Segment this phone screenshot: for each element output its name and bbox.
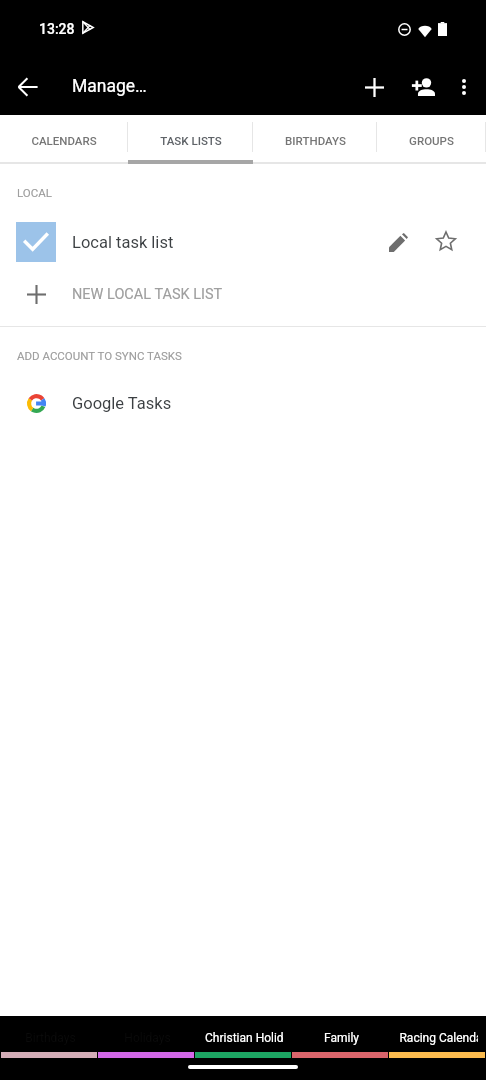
button[interactable]: Add — [350, 63, 398, 111]
staticText: Manage… — [72, 76, 147, 97]
button[interactable]: Back — [4, 63, 52, 111]
button[interactable]: Edit — [374, 218, 422, 266]
staticText: Racing Calendar — [399, 1031, 478, 1045]
button[interactable]: Local task list — [0, 214, 486, 270]
button[interactable]: CALENDARS — [0, 115, 128, 164]
staticText: Christian Holidays — [205, 1031, 284, 1045]
staticText: BIRTHDAYS — [285, 134, 346, 147]
button[interactable]: Favorite — [422, 218, 470, 266]
staticText: LOCAL — [17, 186, 52, 199]
staticText: Family — [302, 1031, 381, 1045]
button[interactable]: GROUPS — [377, 115, 486, 164]
button[interactable]: Christian Holidays — [194, 1016, 291, 1058]
button[interactable]: Google Tasks — [0, 379, 486, 427]
staticText: Google Tasks — [72, 394, 172, 413]
staticText: CALENDARS — [31, 134, 97, 147]
button[interactable]: NEW LOCAL TASK LIST — [0, 270, 486, 318]
button[interactable]: Family — [291, 1016, 388, 1058]
button[interactable]: Birthdays — [0, 1016, 97, 1058]
staticText: GROUPS — [409, 134, 454, 147]
button[interactable]: TASK LISTS — [128, 115, 253, 164]
staticText: 13:28 — [39, 21, 75, 37]
button[interactable]: Racing Calendar — [388, 1016, 485, 1058]
button[interactable]: Add person — [399, 63, 447, 111]
staticText: TASK LISTS — [160, 134, 222, 147]
button[interactable]: Holidays — [97, 1016, 194, 1058]
staticText: NEW LOCAL TASK LIST — [72, 286, 223, 303]
staticText: Local task list — [72, 233, 174, 252]
button[interactable]: BIRTHDAYS — [253, 115, 377, 164]
staticText: ADD ACCOUNT TO SYNC TASKS — [17, 349, 182, 362]
button[interactable]: More options — [440, 63, 486, 111]
